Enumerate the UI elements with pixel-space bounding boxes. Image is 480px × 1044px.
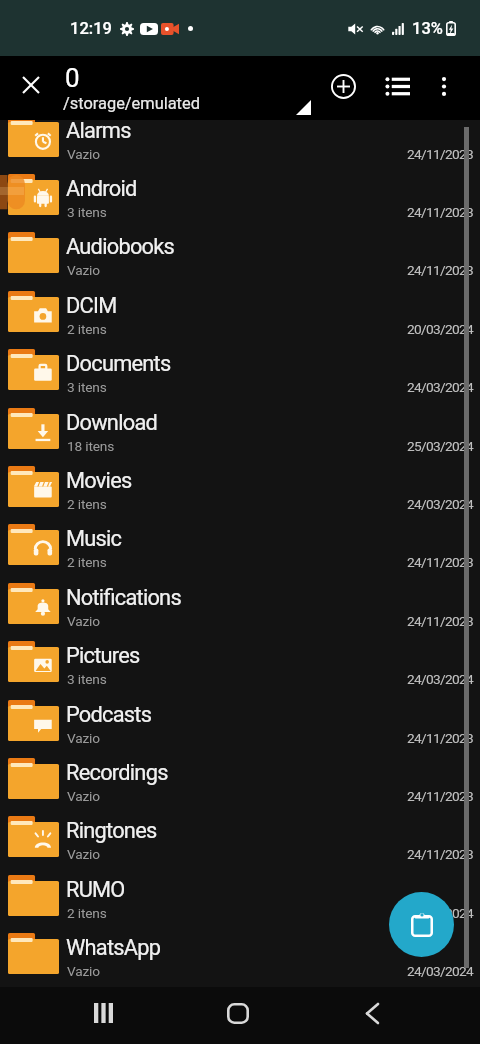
- button[interactable]: Back: [348, 989, 396, 1037]
- button[interactable]: Notifications: [0, 577, 480, 635]
- staticText: 18 itens: [67, 438, 115, 454]
- button[interactable]: Alarms: [0, 120, 480, 168]
- button[interactable]: RUMO: [0, 869, 480, 927]
- staticText: Download: [66, 410, 158, 436]
- button[interactable]: Home: [214, 989, 262, 1037]
- staticText: 3 itens: [67, 204, 107, 220]
- staticText: 12:19: [70, 19, 112, 38]
- staticText: Alarms: [66, 120, 131, 144]
- staticText: 13%: [412, 19, 443, 38]
- staticText: 0: [65, 63, 80, 93]
- button[interactable]: WhatsApp: [0, 927, 480, 985]
- staticText: WhatsApp: [66, 935, 161, 961]
- staticText: 20/03/2024: [407, 321, 474, 337]
- staticText: 24/11/2023: [407, 788, 474, 804]
- staticText: 2 itens: [67, 905, 107, 921]
- staticText: Recordings: [66, 760, 168, 786]
- button[interactable]: Add: [321, 64, 365, 108]
- button[interactable]: Close: [10, 64, 51, 105]
- staticText: DCIM: [66, 293, 117, 319]
- staticText: 24/11/2023: [407, 204, 474, 220]
- staticText: Vazio: [67, 146, 100, 162]
- staticText: 24/11/2023: [407, 846, 474, 862]
- staticText: Audiobooks: [66, 234, 175, 260]
- staticText: /storage/emulated: [63, 94, 200, 113]
- staticText: Notifications: [66, 585, 181, 611]
- staticText: Documents: [66, 351, 171, 377]
- staticText: 24/11/2023: [407, 554, 474, 570]
- staticText: Vazio: [67, 613, 100, 629]
- button[interactable]: Download: [0, 402, 480, 460]
- staticText: Music: [66, 526, 122, 552]
- staticText: Vazio: [67, 730, 100, 746]
- staticText: 24/03/2024: [407, 379, 474, 395]
- button[interactable]: Audiobooks: [0, 226, 480, 284]
- button[interactable]: Recordings: [0, 752, 480, 810]
- staticText: 24/11/2023: [407, 262, 474, 278]
- staticText: 2 itens: [67, 496, 107, 512]
- staticText: 2 itens: [67, 321, 107, 337]
- button[interactable]: Documents: [0, 343, 480, 401]
- staticText: Pictures: [66, 643, 140, 669]
- button[interactable]: Recents: [79, 989, 127, 1037]
- button[interactable]: Ringtones: [0, 810, 480, 868]
- staticText: 24/11/2023: [407, 146, 474, 162]
- button[interactable]: Paste: [389, 892, 454, 957]
- staticText: 24/03/2024: [407, 496, 474, 512]
- button[interactable]: Podcasts: [0, 694, 480, 752]
- button[interactable]: Music: [0, 518, 480, 576]
- staticText: 24/03/2024: [407, 671, 474, 687]
- button[interactable]: More options: [422, 64, 466, 108]
- button[interactable]: DCIM: [0, 285, 480, 343]
- staticText: 24/11/2023: [407, 730, 474, 746]
- staticText: 24/11/2023: [407, 613, 474, 629]
- staticText: Vazio: [67, 963, 100, 979]
- button[interactable]: Movies: [0, 460, 480, 518]
- staticText: 25/03/2024: [407, 438, 474, 454]
- staticText: 24/03/2024: [407, 963, 474, 979]
- button[interactable]: Android: [0, 168, 480, 226]
- button[interactable]: View mode: [376, 64, 420, 108]
- staticText: Vazio: [67, 846, 100, 862]
- staticText: 24/03/2024: [407, 905, 474, 921]
- staticText: RUMO: [66, 877, 125, 903]
- staticText: 2 itens: [67, 554, 107, 570]
- staticText: 3 itens: [67, 671, 107, 687]
- staticText: Movies: [66, 468, 132, 494]
- staticText: Vazio: [67, 262, 100, 278]
- staticText: 3 itens: [67, 379, 107, 395]
- staticText: Vazio: [67, 788, 100, 804]
- staticText: Ringtones: [66, 818, 157, 844]
- staticText: Android: [66, 176, 137, 202]
- button[interactable]: Pictures: [0, 635, 480, 693]
- staticText: Podcasts: [66, 702, 152, 728]
